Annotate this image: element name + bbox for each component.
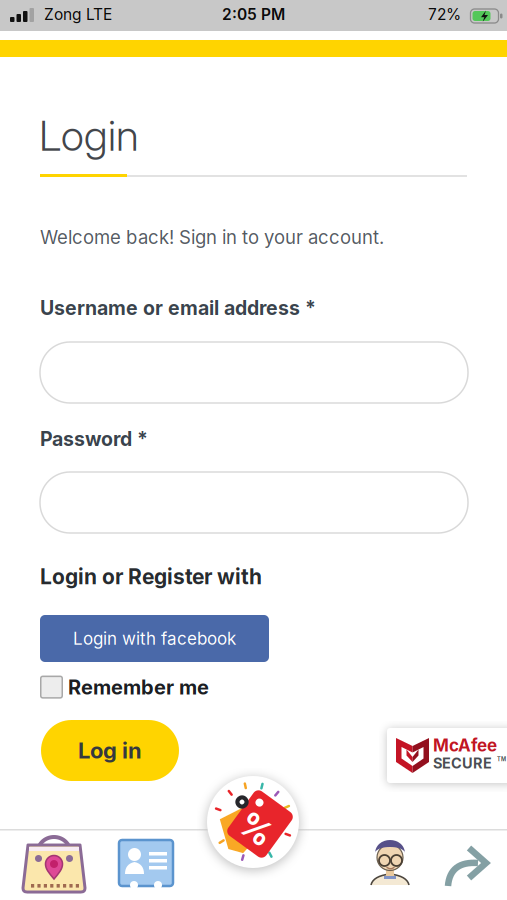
staticText: 72%	[428, 5, 461, 24]
staticText: %	[243, 809, 276, 850]
staticText: Username or email address *	[40, 296, 316, 320]
button[interactable]: Login with facebook	[40, 615, 269, 662]
button[interactable]: Deals	[205, 774, 301, 870]
staticText: Welcome back! Sign in to your account.	[40, 226, 384, 248]
staticText: Login	[39, 110, 139, 161]
staticText: Zong LTE	[44, 5, 112, 24]
staticText: Log in	[78, 737, 142, 764]
staticText: TM	[497, 756, 506, 763]
staticText: Login or Register with	[40, 564, 262, 589]
button[interactable]: Username or email address	[40, 342, 468, 403]
staticText: Remember me	[68, 675, 209, 699]
button[interactable]: Shops	[21, 832, 87, 896]
button[interactable]: Contact card	[119, 840, 173, 886]
button[interactable]: Forward	[444, 846, 496, 888]
staticText: Login with facebook	[73, 628, 236, 649]
button[interactable]: Profile	[370, 838, 410, 886]
button[interactable]: Log in	[41, 720, 179, 781]
staticText: SECURE	[433, 754, 492, 772]
button[interactable]: Password	[40, 472, 468, 533]
staticText: Password *	[40, 427, 148, 451]
staticText: McAfee	[433, 735, 497, 756]
staticText: 2:05 PM	[222, 5, 285, 24]
button[interactable]: Remember me	[40, 675, 209, 699]
